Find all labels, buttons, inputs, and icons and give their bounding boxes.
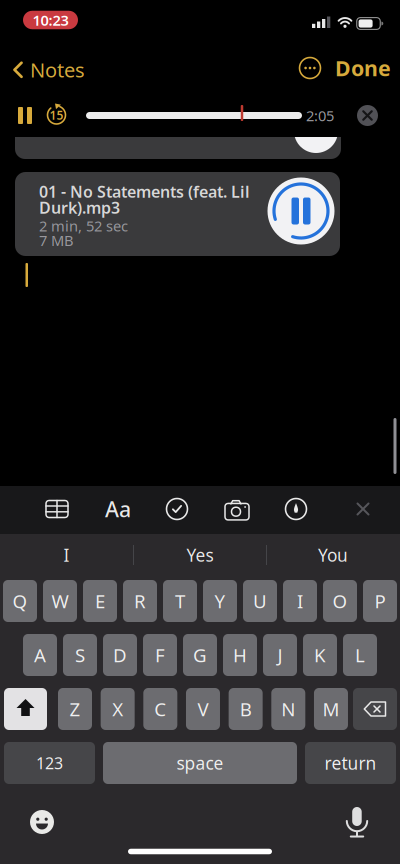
staticText: 2 min, 52 sec: [39, 216, 128, 235]
button[interactable]: Insert table: [45, 499, 69, 519]
button[interactable]: 01 - No Statements (feat. Lil: [15, 172, 340, 256]
staticText: R: [134, 589, 146, 613]
button[interactable]: C: [143, 688, 177, 730]
button[interactable]: Pause attachment: [267, 177, 334, 244]
staticText: K: [314, 643, 326, 667]
staticText: L: [355, 643, 365, 667]
staticText: Done: [335, 54, 391, 82]
button[interactable]: A: [23, 634, 57, 676]
staticText: N: [281, 697, 295, 721]
staticText: F: [155, 643, 165, 667]
button[interactable]: Markup: [285, 498, 306, 519]
staticText: 01 - No Statements (feat. Lil: [39, 181, 250, 202]
staticText: X: [112, 697, 123, 721]
button[interactable]: N: [271, 688, 305, 730]
staticText: J: [277, 643, 282, 667]
button[interactable]: Z: [58, 688, 92, 730]
staticText: D: [113, 643, 127, 667]
staticText: You: [318, 543, 348, 566]
staticText: 10:23: [32, 10, 68, 30]
button[interactable]: Y: [203, 580, 237, 622]
staticText: Durk).mp3: [39, 197, 120, 218]
button[interactable]: L: [343, 634, 377, 676]
button[interactable]: 123: [4, 742, 95, 784]
staticText: P: [374, 589, 385, 613]
button[interactable]: You: [273, 535, 393, 575]
staticText: Aa: [105, 495, 131, 523]
staticText: space: [176, 751, 223, 774]
staticText: I: [297, 589, 303, 613]
button[interactable]: F: [143, 634, 177, 676]
button[interactable]: E: [83, 580, 117, 622]
staticText: G: [193, 643, 207, 667]
button[interactable]: Q: [3, 580, 37, 622]
staticText: Notes: [30, 56, 85, 83]
button[interactable]: Skip back 15 seconds: [45, 103, 67, 126]
button[interactable]: J: [263, 634, 297, 676]
button[interactable]: I: [6, 535, 126, 575]
staticText: 123: [36, 752, 63, 774]
button[interactable]: Pause: [15, 104, 35, 126]
button[interactable]: Recording indicator: [23, 11, 78, 29]
button[interactable]: H: [223, 634, 257, 676]
staticText: 7 MB: [39, 230, 74, 250]
staticText: return: [324, 751, 376, 774]
button[interactable]: T: [163, 580, 197, 622]
button[interactable]: S: [63, 634, 97, 676]
button[interactable]: B: [229, 688, 263, 730]
staticText: Yes: [186, 543, 213, 566]
button[interactable]: U: [243, 580, 277, 622]
button[interactable]: Dismiss keyboard bar: [357, 503, 369, 515]
staticText: C: [154, 697, 166, 721]
button[interactable]: Dictate: [344, 806, 370, 838]
button[interactable]: D: [103, 634, 137, 676]
staticText: T: [175, 589, 185, 613]
button[interactable]: Camera: [224, 499, 249, 520]
staticText: 15: [49, 107, 63, 123]
button[interactable]: Delete: [353, 688, 397, 730]
staticText: W: [51, 589, 68, 613]
staticText: V: [197, 697, 208, 721]
button[interactable]: Done: [335, 54, 391, 82]
staticText: Z: [69, 697, 80, 721]
button[interactable]: Back to Notes: [13, 56, 85, 83]
button[interactable]: space: [103, 742, 297, 784]
button[interactable]: Close player: [357, 105, 378, 126]
button[interactable]: P: [363, 580, 397, 622]
staticText: S: [75, 643, 85, 667]
button[interactable]: R: [123, 580, 157, 622]
staticText: B: [240, 697, 252, 721]
staticText: E: [95, 589, 105, 613]
staticText: Y: [214, 589, 225, 613]
staticText: H: [233, 643, 247, 667]
button[interactable]: Checklist: [166, 498, 187, 519]
button[interactable]: K: [303, 634, 337, 676]
button[interactable]: V: [186, 688, 220, 730]
button[interactable]: I: [283, 580, 317, 622]
staticText: U: [253, 589, 267, 613]
button[interactable]: G: [183, 634, 217, 676]
button[interactable]: Emoji: [30, 810, 54, 834]
button[interactable]: Formatting: [105, 495, 131, 523]
staticText: Q: [12, 589, 27, 613]
staticText: O: [332, 589, 347, 613]
button[interactable]: O: [323, 580, 357, 622]
staticText: A: [34, 643, 46, 667]
button[interactable]: More options: [299, 57, 320, 78]
staticText: I: [63, 543, 69, 566]
staticText: 2:05: [306, 106, 334, 125]
button[interactable]: Shift: [4, 688, 47, 730]
staticText: M: [322, 697, 339, 721]
button[interactable]: Yes: [140, 535, 260, 575]
button[interactable]: M: [314, 688, 348, 730]
button[interactable]: return: [305, 742, 396, 784]
button[interactable]: W: [43, 580, 77, 622]
button[interactable]: X: [101, 688, 135, 730]
